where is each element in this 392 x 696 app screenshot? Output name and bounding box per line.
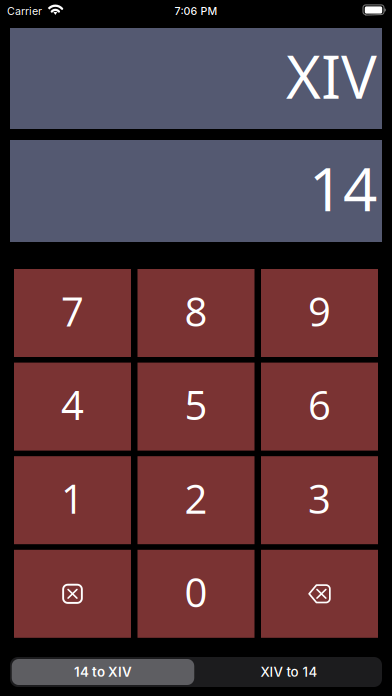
staticText: Carrier	[7, 4, 42, 17]
button[interactable]: 5	[137, 363, 254, 451]
button[interactable]: 8	[137, 269, 254, 357]
button[interactable]: 9	[261, 269, 378, 357]
staticText: 14 to XIV	[74, 664, 132, 680]
staticText: 5	[184, 377, 207, 432]
button[interactable]: Delete	[261, 550, 378, 638]
button[interactable]: 6	[261, 363, 378, 451]
staticText: 3	[308, 471, 331, 525]
button[interactable]: 1	[14, 456, 131, 544]
staticText: 1	[61, 471, 84, 525]
button[interactable]: 7	[14, 269, 131, 357]
staticText: 2	[184, 471, 207, 525]
staticText: 0	[184, 565, 207, 619]
button[interactable]: 2	[137, 456, 254, 544]
staticText: XIV to 14	[260, 664, 317, 680]
button[interactable]: Clear	[14, 550, 131, 638]
staticText: 6	[308, 377, 331, 432]
staticText: 8	[184, 284, 207, 338]
button[interactable]: 0	[137, 550, 254, 638]
button[interactable]: 4	[14, 363, 131, 451]
button[interactable]: 3	[261, 456, 378, 544]
button[interactable]: XIV to 14	[196, 657, 382, 687]
staticText: 4	[61, 377, 84, 432]
staticText: 7	[61, 284, 84, 338]
staticText: 7:06 PM	[174, 4, 217, 17]
staticText: 9	[308, 284, 331, 338]
staticText: XIV	[286, 35, 377, 116]
staticText: 14	[309, 147, 377, 229]
button[interactable]: 14 to XIV	[10, 657, 196, 687]
